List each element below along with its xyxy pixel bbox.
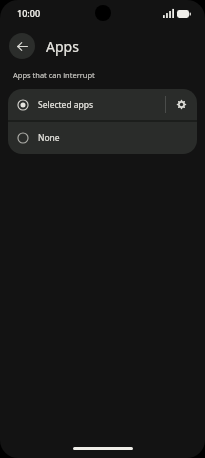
button[interactable]: Settings xyxy=(166,89,197,120)
staticText: None xyxy=(38,132,60,144)
staticText: 10:00 xyxy=(17,7,41,19)
button[interactable]: None xyxy=(8,122,197,154)
staticText: Apps that can interrupt xyxy=(13,70,95,80)
button[interactable]: Back xyxy=(9,33,35,59)
staticText: Apps xyxy=(46,37,79,56)
button[interactable]: Selected apps xyxy=(8,89,165,120)
staticText: Selected apps xyxy=(38,99,94,111)
